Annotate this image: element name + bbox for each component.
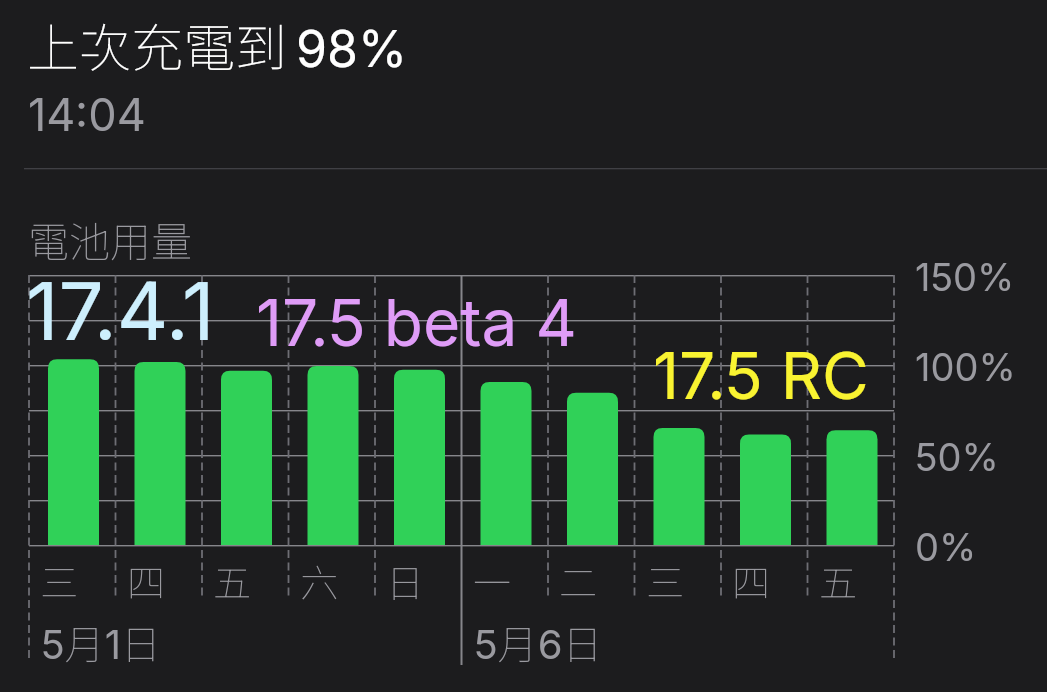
button[interactable]: 上次充電到 98%: [0, 0, 1047, 168]
staticText: 五: [213, 553, 252, 608]
button[interactable]: Battery usage on 五: [808, 275, 895, 545]
button[interactable]: Battery usage on 四: [721, 275, 808, 545]
staticText: 六: [300, 553, 339, 608]
staticText: 50%: [915, 434, 999, 480]
staticText: 三: [646, 553, 685, 608]
button[interactable]: Battery usage on 二: [548, 275, 635, 545]
staticText: 100%: [915, 344, 1016, 390]
staticText: 14:04: [28, 87, 146, 141]
staticText: 17.5 beta 4: [256, 284, 577, 361]
staticText: 17.4.1: [26, 262, 215, 359]
staticText: 上次充電到 98%: [27, 7, 408, 82]
button[interactable]: Battery usage on 三: [29, 275, 116, 545]
staticText: 四: [127, 553, 166, 608]
staticText: 17.5 RC: [653, 337, 869, 414]
staticText: 電池用量: [28, 209, 192, 268]
staticText: 日: [386, 553, 425, 608]
button[interactable]: Battery usage on 六: [289, 275, 376, 545]
staticText: 5月6日: [474, 613, 603, 671]
button[interactable]: Battery usage on 四: [116, 275, 203, 545]
staticText: 一: [473, 553, 512, 608]
button[interactable]: Battery usage on 五: [202, 275, 289, 545]
button[interactable]: Battery usage on 三: [635, 275, 722, 545]
staticText: 四: [732, 553, 771, 608]
staticText: 0%: [915, 524, 977, 570]
staticText: 150%: [915, 254, 1015, 300]
staticText: 二: [559, 553, 598, 608]
staticText: 五: [819, 553, 858, 608]
button[interactable]: Battery usage on 日: [375, 275, 462, 545]
staticText: 三: [40, 553, 79, 608]
button[interactable]: Battery usage on 一: [462, 275, 549, 545]
staticText: 5月1日: [41, 613, 161, 671]
